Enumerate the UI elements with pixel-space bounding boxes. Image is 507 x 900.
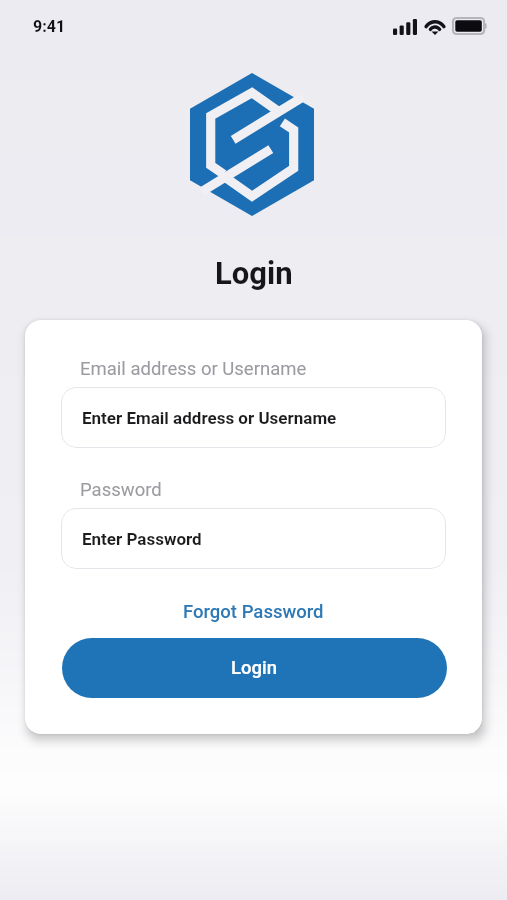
button[interactable]: Enter Password <box>61 508 446 569</box>
staticText: Login <box>231 657 278 679</box>
staticText: Email address or Username <box>80 358 307 380</box>
staticText: 9:41 <box>33 17 66 36</box>
button[interactable]: Forgot Password <box>175 598 332 626</box>
button[interactable]: Enter Email address or Username <box>61 387 446 448</box>
staticText: Login <box>215 255 293 291</box>
staticText: Enter Password <box>82 529 202 549</box>
staticText: Password <box>80 479 162 501</box>
staticText: Enter Email address or Username <box>82 408 337 428</box>
button[interactable]: Login <box>62 638 447 698</box>
